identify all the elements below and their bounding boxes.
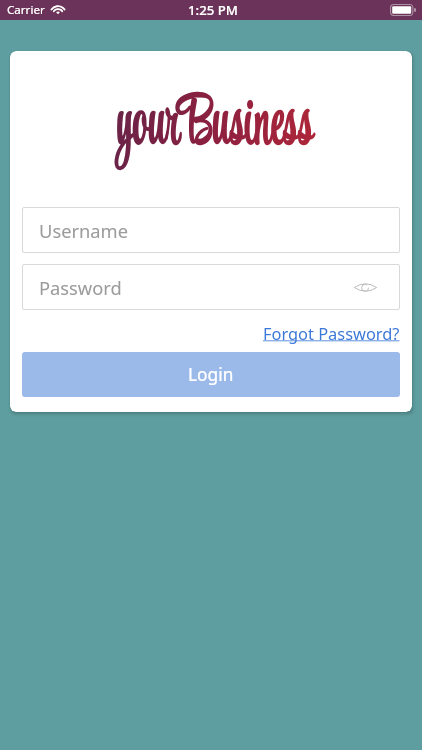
button[interactable]: Forgot Password?	[263, 320, 400, 346]
button[interactable]: Login	[22, 352, 400, 397]
staticText: Username	[39, 218, 129, 243]
staticText: Carrier	[7, 2, 45, 18]
staticText: Forgot Password?	[263, 322, 400, 344]
staticText: 1:25 PM	[188, 1, 238, 19]
staticText: Password	[39, 275, 122, 300]
staticText: Login	[188, 363, 234, 387]
staticText: yourBusiness	[117, 73, 313, 178]
button[interactable]: Username	[22, 207, 400, 253]
button[interactable]: Password	[22, 264, 400, 310]
button[interactable]: Show password	[352, 274, 378, 300]
staticText: yourBusiness	[117, 73, 313, 178]
